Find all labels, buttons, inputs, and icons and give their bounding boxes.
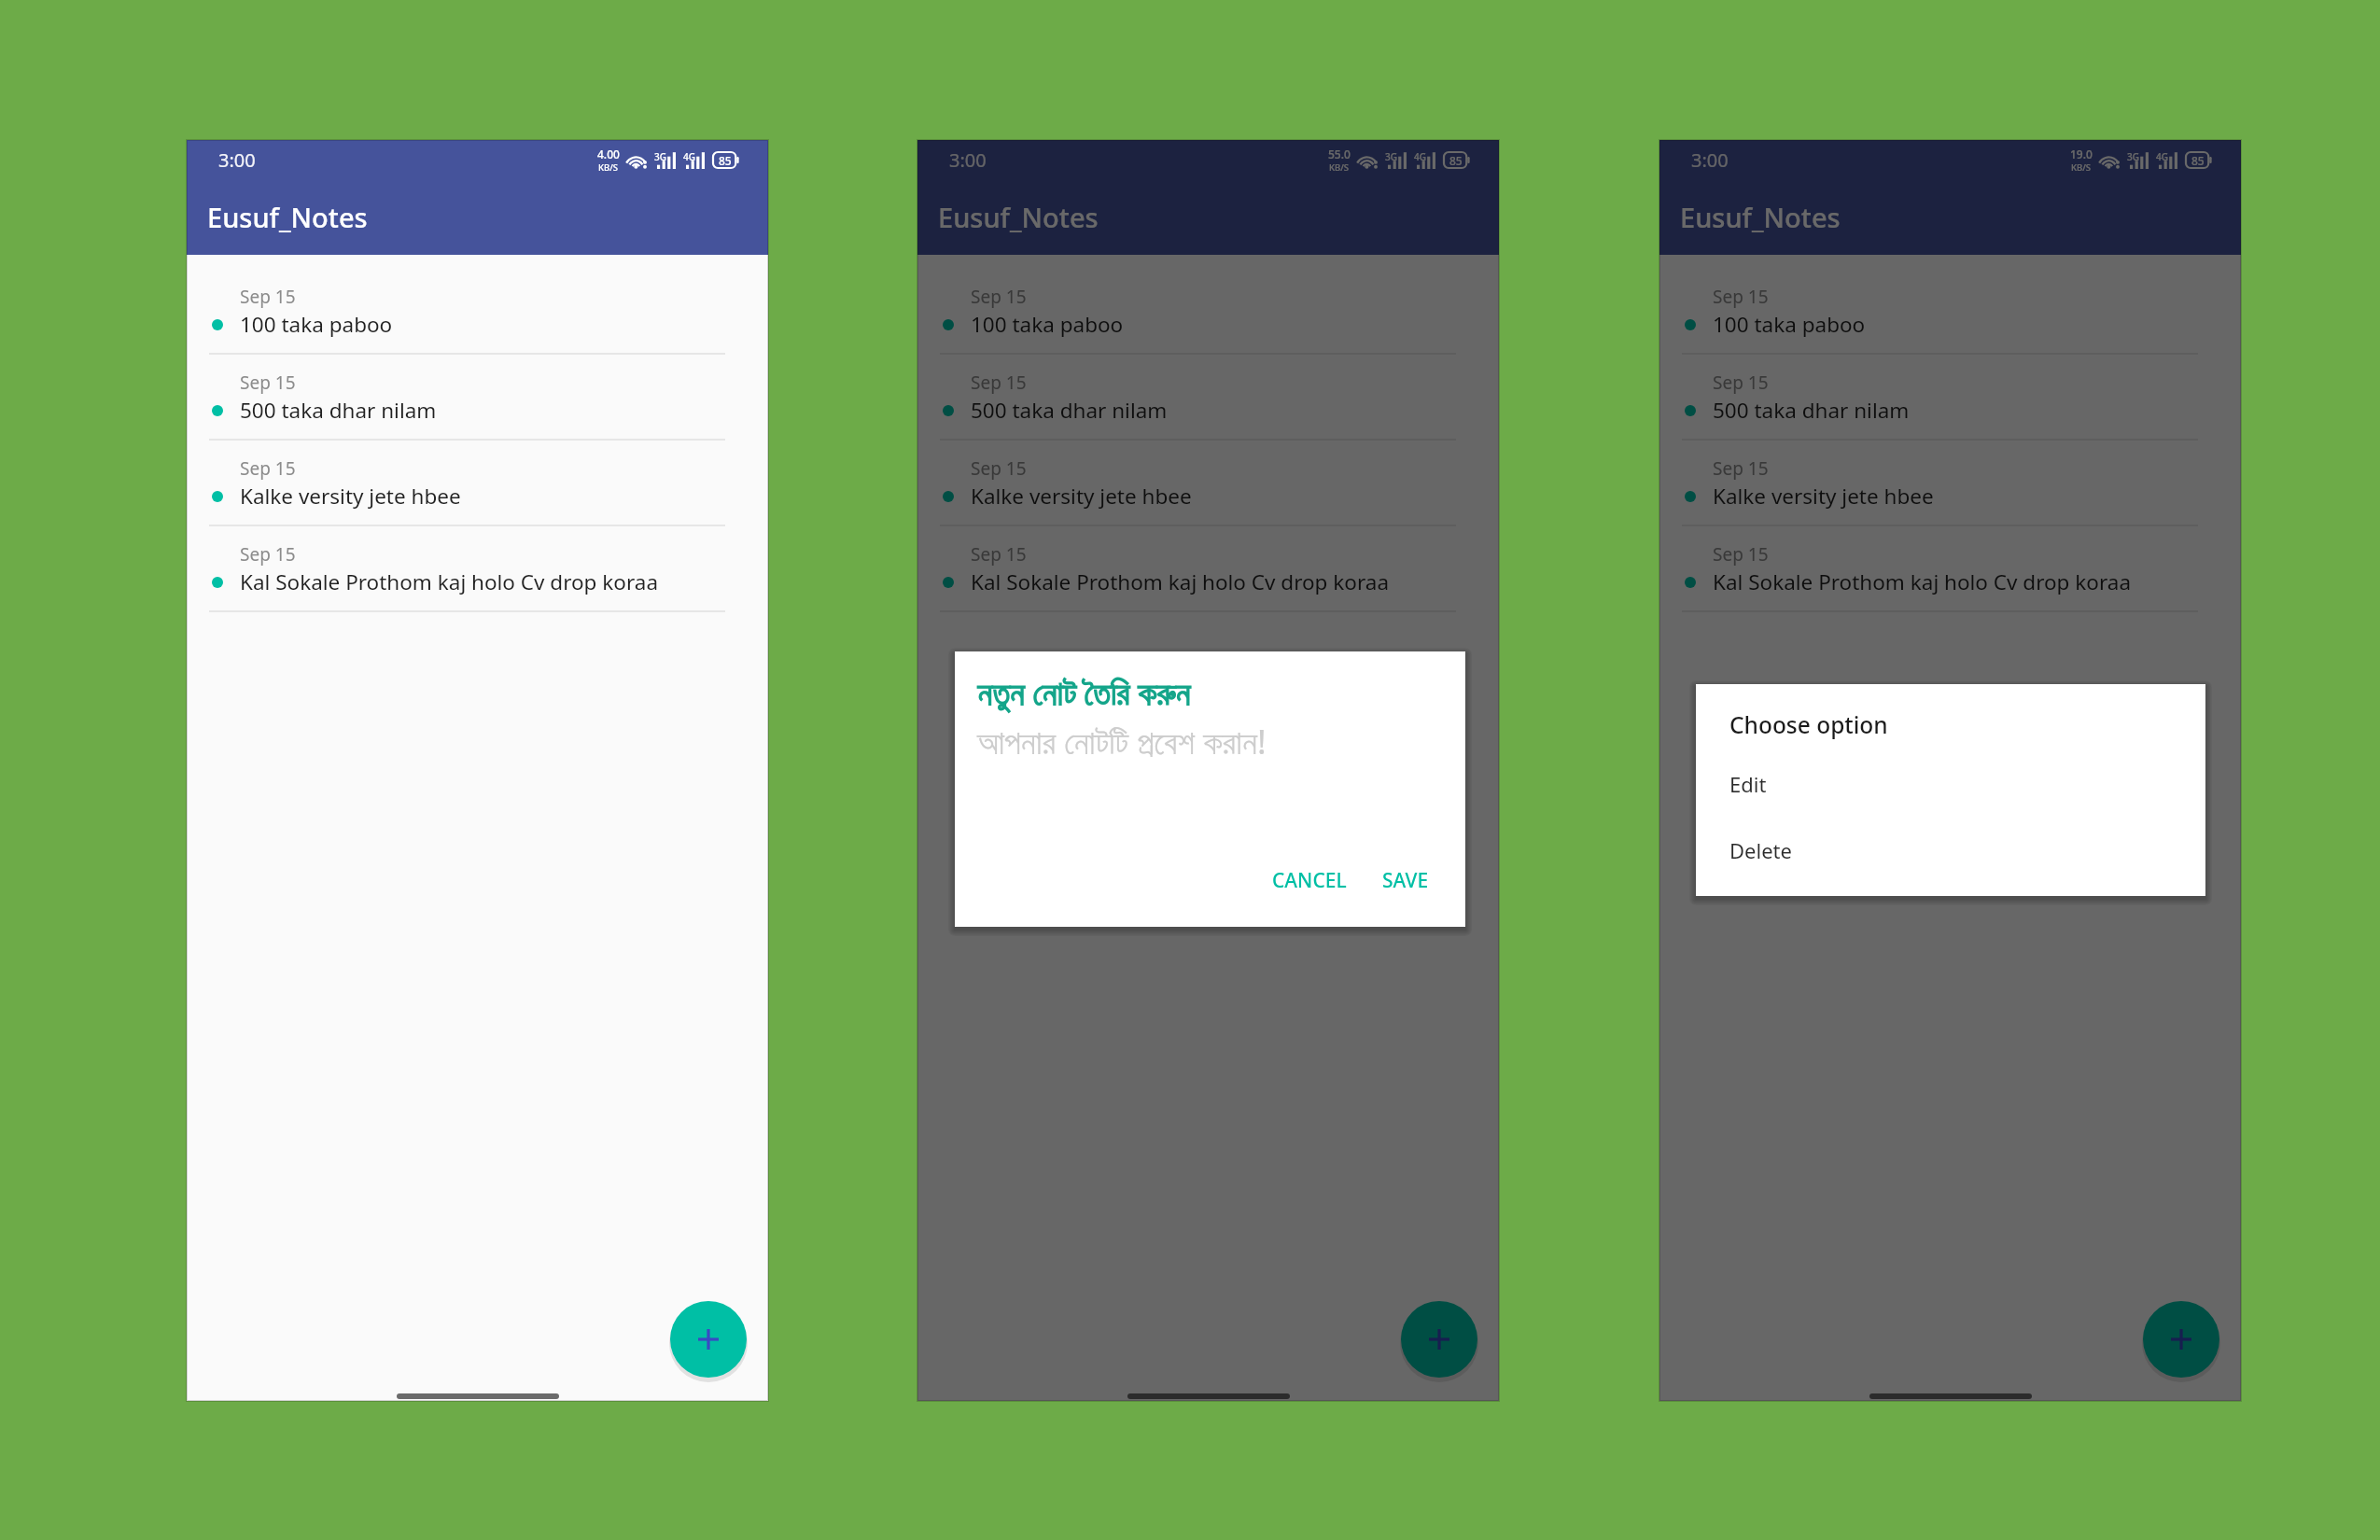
- staticText: Choose option: [1729, 709, 1888, 740]
- staticText: 500 taka dhar nilam: [240, 396, 437, 425]
- staticText: Sep 15: [240, 542, 296, 567]
- staticText: Sep 15: [971, 456, 1027, 481]
- staticText: SAVE: [1382, 867, 1429, 894]
- button[interactable]: Sep 15: [1659, 441, 2241, 526]
- staticText: Kal Sokale Prothom kaj holo Cv drop kora…: [240, 567, 659, 596]
- staticText: Eusuf_Notes: [938, 199, 1099, 235]
- staticText: 55.0: [1328, 147, 1351, 161]
- staticText: 3:00: [1691, 147, 1729, 173]
- staticText: Sep 15: [971, 371, 1027, 395]
- staticText: KB/S: [598, 161, 619, 174]
- staticText: 4G: [683, 150, 695, 163]
- staticText: 3:00: [218, 147, 256, 173]
- button[interactable]: Sep 15: [917, 526, 1499, 612]
- staticText: 3G: [2127, 150, 2139, 163]
- staticText: Sep 15: [1713, 456, 1769, 481]
- button[interactable]: Sep 15: [187, 355, 768, 441]
- staticText: 500 taka dhar nilam: [971, 396, 1168, 425]
- staticText: 500 taka dhar nilam: [1713, 396, 1910, 425]
- staticText: Kal Sokale Prothom kaj holo Cv drop kora…: [1713, 567, 2132, 596]
- staticText: Sep 15: [971, 542, 1027, 567]
- button[interactable]: SAVE: [1375, 861, 1436, 900]
- button[interactable]: Delete: [1696, 823, 2205, 877]
- staticText: Delete: [1729, 836, 1792, 864]
- staticText: KB/S: [1329, 161, 1350, 174]
- staticText: Kalke versity jete hbee: [971, 482, 1192, 511]
- staticText: Kalke versity jete hbee: [240, 482, 461, 511]
- staticText: Sep 15: [971, 285, 1027, 309]
- staticText: 4.00: [597, 147, 620, 161]
- staticText: 100 taka paboo: [240, 310, 393, 339]
- button[interactable]: Sep 15: [187, 269, 768, 355]
- button[interactable]: Sep 15: [917, 355, 1499, 441]
- button[interactable]: Sep 15: [1659, 355, 2241, 441]
- staticText: 4G: [2156, 150, 2168, 163]
- button[interactable]: CANCEL: [1265, 861, 1354, 900]
- staticText: Eusuf_Notes: [207, 199, 368, 235]
- staticText: নতুন নোট তৈরি করুন: [977, 671, 1190, 716]
- staticText: 3G: [1385, 150, 1397, 163]
- button[interactable]: Sep 15: [187, 441, 768, 526]
- staticText: Kalke versity jete hbee: [1713, 482, 1934, 511]
- button[interactable]: Sep 15: [917, 269, 1499, 355]
- staticText: 3:00: [949, 147, 987, 173]
- button[interactable]: Edit: [1696, 757, 2205, 811]
- staticText: Sep 15: [1713, 371, 1769, 395]
- staticText: Sep 15: [240, 285, 296, 309]
- staticText: KB/S: [2071, 161, 2092, 174]
- staticText: 85: [719, 153, 732, 168]
- button[interactable]: Add new note: [2143, 1301, 2219, 1378]
- staticText: Kal Sokale Prothom kaj holo Cv drop kora…: [971, 567, 1390, 596]
- staticText: 85: [1449, 153, 1463, 168]
- button[interactable]: Sep 15: [187, 526, 768, 612]
- staticText: Edit: [1729, 770, 1767, 798]
- staticText: Sep 15: [240, 371, 296, 395]
- staticText: 100 taka paboo: [971, 310, 1124, 339]
- staticText: 19.0: [2070, 147, 2093, 161]
- staticText: CANCEL: [1272, 867, 1347, 894]
- staticText: 85: [2191, 153, 2205, 168]
- staticText: Sep 15: [1713, 285, 1769, 309]
- button[interactable]: Sep 15: [1659, 269, 2241, 355]
- staticText: 100 taka paboo: [1713, 310, 1866, 339]
- staticText: 4G: [1414, 150, 1426, 163]
- staticText: Eusuf_Notes: [1680, 199, 1841, 235]
- button[interactable]: Add new note: [1401, 1301, 1477, 1378]
- staticText: 3G: [654, 150, 666, 163]
- button[interactable]: Sep 15: [1659, 526, 2241, 612]
- button[interactable]: Sep 15: [917, 441, 1499, 526]
- staticText: Sep 15: [1713, 542, 1769, 567]
- staticText: Sep 15: [240, 456, 296, 481]
- staticText: আপনার নোটটি প্রবেশ করান!: [977, 719, 1267, 764]
- button[interactable]: Add new note: [670, 1301, 747, 1378]
